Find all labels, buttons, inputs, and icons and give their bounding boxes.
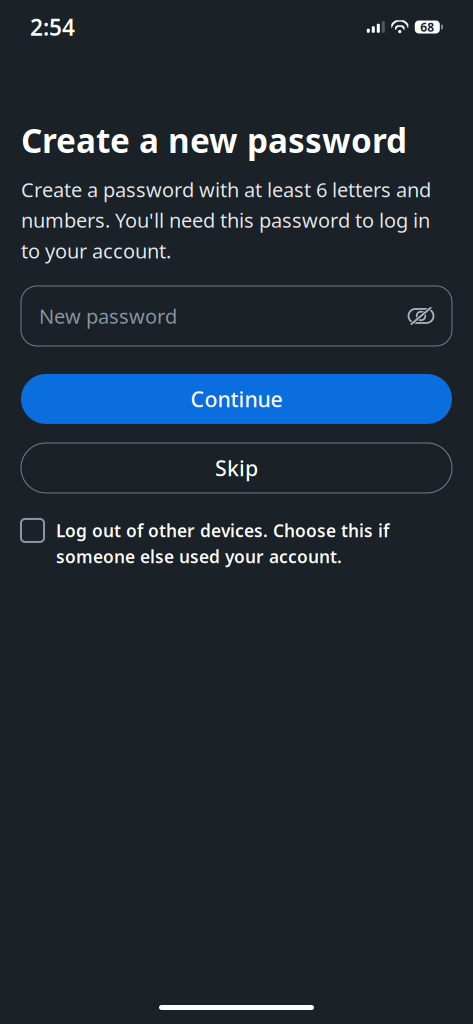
- button[interactable]: Continue: [21, 374, 452, 424]
- staticText: Create a password with at least 6 letter…: [21, 176, 431, 264]
- staticText: 2:54: [30, 12, 75, 42]
- staticText: Create a new password: [21, 118, 407, 162]
- staticText: Skip: [215, 454, 258, 482]
- staticText: Log out of other devices. Choose this if…: [56, 519, 389, 568]
- staticText: 68: [420, 19, 434, 35]
- button[interactable]: New password: [21, 286, 452, 346]
- button[interactable]: Log out of other devices. Choose this if…: [21, 519, 452, 568]
- staticText: Continue: [190, 385, 282, 413]
- staticText: New password: [39, 303, 177, 329]
- button[interactable]: Skip: [21, 443, 452, 493]
